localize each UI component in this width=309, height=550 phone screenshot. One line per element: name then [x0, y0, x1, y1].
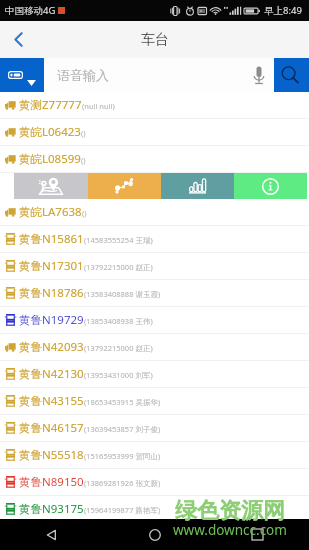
staticText: 黄皖L08599	[19, 151, 81, 167]
button[interactable]: 语音输入	[44, 58, 274, 92]
staticText: (13953431000 刘军)	[84, 370, 153, 380]
staticText: 黄皖LA7638	[19, 204, 82, 220]
button[interactable]: 黄鲁N15861	[0, 226, 309, 253]
button[interactable]: 黄鲁N46157	[0, 415, 309, 442]
staticText: 黄鲁N19729	[19, 312, 84, 328]
button[interactable]: Back	[0, 21, 37, 58]
staticText: (18653453915 吴振华)	[84, 397, 161, 407]
staticText: 黄鲁N17301	[19, 258, 84, 274]
staticText: 黄鲁N93175	[19, 501, 84, 517]
button[interactable]: 黄鲁N19729	[0, 307, 309, 334]
button[interactable]: 黄鲁N43155	[0, 388, 309, 415]
button[interactable]: Home	[103, 519, 206, 550]
staticText: 黄鲁N15861	[19, 231, 84, 247]
staticText: (13639453857 刘子俊)	[84, 424, 161, 434]
button[interactable]: 黄皖L08599	[0, 146, 309, 173]
staticText: 黄鲁N55518	[19, 447, 84, 463]
staticText: 黄测Z77777	[19, 97, 82, 113]
button[interactable]: Track history	[88, 173, 161, 199]
button[interactable]: Back	[0, 519, 103, 550]
staticText: (13792215000 赵正)	[84, 343, 153, 353]
button[interactable]: 黄鲁N55518	[0, 442, 309, 469]
button[interactable]: Voice input	[246, 58, 274, 92]
button[interactable]: 黄测Z77777	[0, 92, 309, 119]
staticText: (null null)	[82, 101, 115, 111]
staticText: 中国移动4G	[5, 4, 56, 17]
button[interactable]: 黄鲁N89150	[0, 469, 309, 496]
button[interactable]: 黄鲁N18786	[0, 280, 309, 307]
staticText: (13853408938 王伟)	[84, 316, 153, 326]
button[interactable]: 黄皖L06423	[0, 119, 309, 146]
staticText: 黄皖L06423	[19, 124, 81, 140]
button[interactable]: 黄鲁N17301	[0, 253, 309, 280]
button[interactable]: Recent apps	[206, 519, 309, 550]
staticText: (15964199877 路艳军)	[84, 505, 161, 515]
staticText: ()	[82, 208, 87, 218]
staticText: ()	[81, 128, 86, 138]
staticText: www.downcc.com	[173, 521, 287, 539]
staticText: 早上8:49	[264, 4, 302, 17]
button[interactable]: Search	[274, 58, 309, 92]
staticText: 黄鲁N89150	[19, 474, 84, 490]
button[interactable]: 黄鲁N42130	[0, 361, 309, 388]
button[interactable]: 黄皖LA7638	[0, 199, 309, 226]
staticText: (13583408888 谢玉霞)	[84, 289, 161, 299]
staticText: ()	[81, 155, 86, 165]
staticText: (13869281926 张文新)	[84, 478, 161, 488]
staticText: 黄鲁N42130	[19, 366, 84, 382]
staticText: 黄鲁N46157	[19, 420, 84, 436]
staticText: 黄鲁N42093	[19, 339, 84, 355]
staticText: 语音输入	[57, 67, 109, 83]
staticText: (13792215000 赵正)	[84, 262, 153, 272]
button[interactable]: Information	[234, 173, 307, 199]
button[interactable]: Plate type filter	[0, 58, 44, 92]
staticText: (15165953999 贺同山)	[84, 451, 161, 461]
staticText: 黄鲁N18786	[19, 285, 84, 301]
button[interactable]: 黄鲁N42093	[0, 334, 309, 361]
button[interactable]: Statistics	[161, 173, 234, 199]
button[interactable]: 黄鲁N93175	[0, 496, 309, 523]
button[interactable]: Locate on map	[14, 173, 88, 199]
staticText: 绿色资源网	[175, 497, 285, 525]
staticText: 黄鲁N43155	[19, 393, 84, 409]
staticText: (14583555254 王瑞)	[84, 235, 153, 245]
staticText: 车台	[141, 31, 169, 49]
